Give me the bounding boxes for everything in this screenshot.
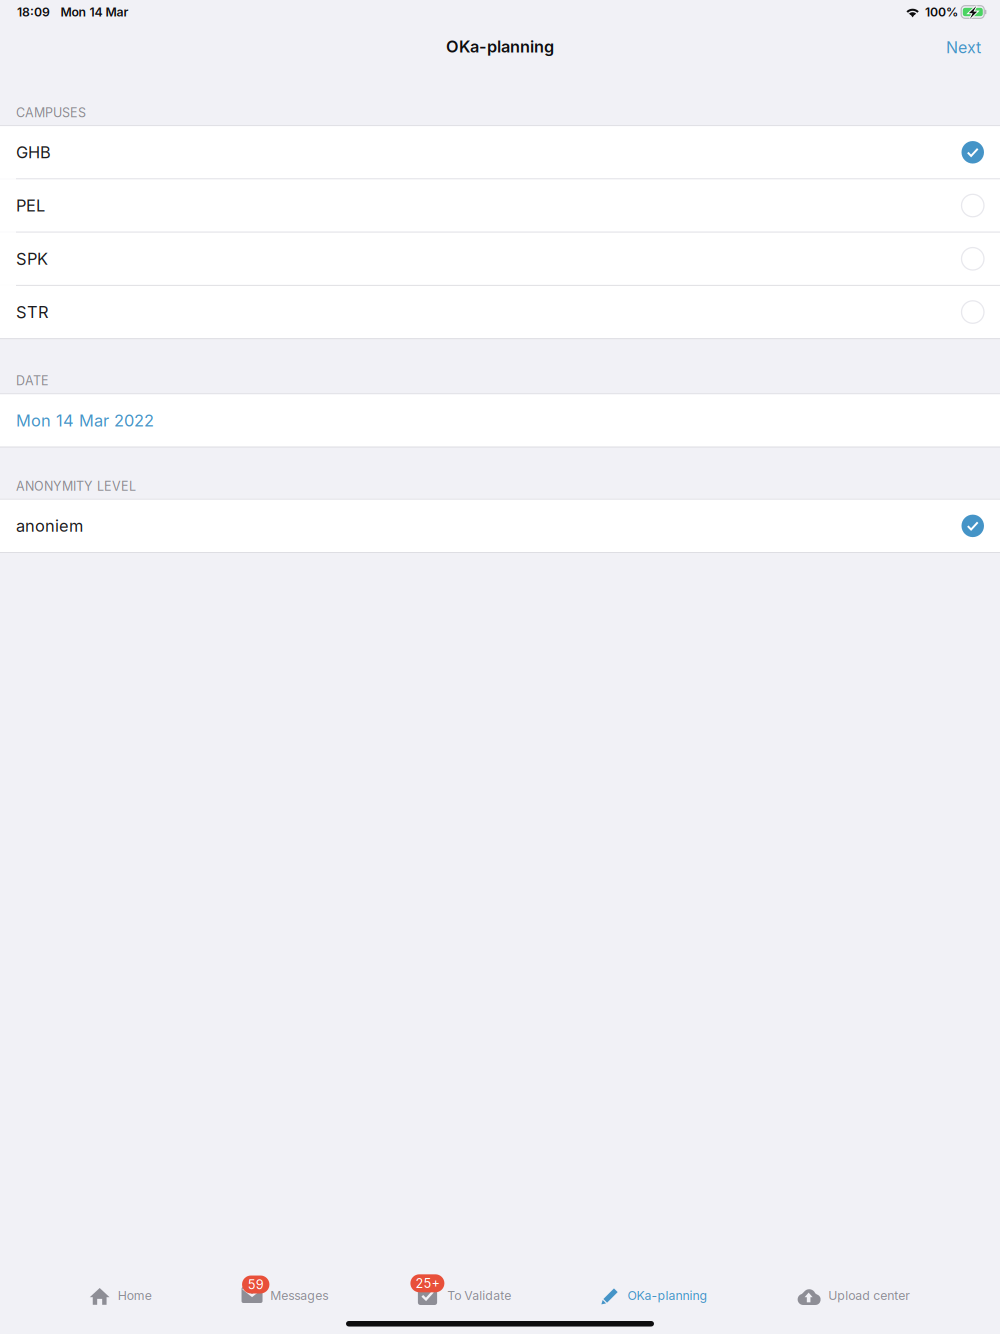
- staticText: OKa-planning: [627, 1288, 707, 1303]
- staticText: CAMPUSES: [16, 105, 86, 120]
- staticText: anoniem: [16, 516, 83, 536]
- staticText: 100%: [925, 5, 958, 19]
- staticText: DATE: [16, 373, 49, 388]
- staticText: GHB: [16, 142, 51, 162]
- staticText: PEL: [16, 196, 45, 215]
- staticText: Home: [118, 1288, 152, 1303]
- staticText: Mon 14 Mar 2022: [16, 410, 154, 430]
- staticText: To Validate: [447, 1288, 511, 1303]
- staticText: OKa-planning: [446, 37, 554, 56]
- button[interactable]: anoniem: [0, 500, 1000, 552]
- button[interactable]: Next: [936, 29, 991, 66]
- staticText: STR: [16, 302, 49, 322]
- button[interactable]: Home: [90, 1286, 152, 1305]
- button[interactable]: 59: [241, 1286, 328, 1305]
- button[interactable]: Mon 14 Mar 2022: [0, 394, 1000, 446]
- staticText: 18:09: [17, 5, 50, 19]
- button[interactable]: OKa-planning: [601, 1286, 707, 1305]
- staticText: SPK: [16, 249, 48, 269]
- staticText: 25+: [415, 1276, 439, 1291]
- button[interactable]: STR: [0, 286, 1000, 338]
- button[interactable]: 25+: [418, 1286, 511, 1305]
- button[interactable]: PEL: [0, 179, 1000, 232]
- button[interactable]: SPK: [0, 233, 1000, 285]
- staticText: Next: [946, 38, 981, 57]
- staticText: ANONYMITY LEVEL: [16, 479, 136, 494]
- staticText: 59: [248, 1277, 264, 1292]
- staticText: Messages: [270, 1288, 328, 1303]
- button[interactable]: GHB: [0, 126, 1000, 178]
- staticText: Upload center: [828, 1288, 910, 1303]
- staticText: Mon 14 Mar: [60, 5, 128, 19]
- button[interactable]: Upload center: [797, 1286, 910, 1305]
